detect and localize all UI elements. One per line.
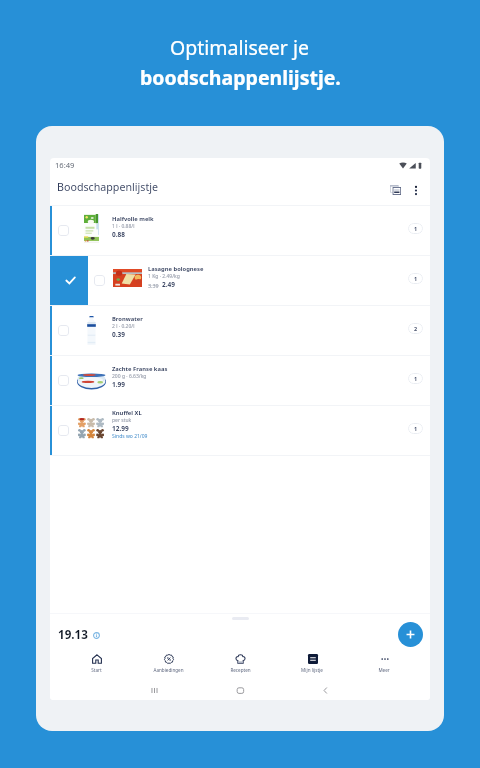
button[interactable]: Home (236, 684, 245, 696)
button[interactable]: Mijn lijstje (281, 652, 343, 674)
button[interactable]: Price info (93, 632, 100, 639)
staticText: Lasagne bolognese (148, 265, 204, 273)
button[interactable]: Meer (353, 652, 415, 674)
staticText: 200 g · 6.63/kg (112, 373, 147, 380)
button[interactable]: Quantity 1 (408, 223, 423, 234)
button[interactable]: More options (408, 182, 424, 198)
staticText: boodschappenlijstje. (140, 64, 341, 91)
staticText: per stuk (112, 417, 132, 424)
staticText: 0.88 (112, 230, 125, 239)
button[interactable]: Back (321, 684, 330, 696)
staticText: Boodschappenlijstje (57, 180, 159, 195)
button[interactable]: Quantity 2 (408, 323, 423, 334)
button[interactable]: Check Knuffel XL (50, 406, 430, 455)
button[interactable]: Quantity 1 (408, 423, 423, 434)
staticText: Sinds wo 21/09 (112, 433, 148, 440)
button[interactable]: Check Zachte Franse kaas (50, 356, 430, 405)
staticText: 1 Kg · 2.49/kg (148, 273, 180, 280)
staticText: 1 l · 0.88/l (112, 223, 135, 230)
staticText: 2.49 (162, 280, 175, 289)
staticText: 1 (414, 425, 418, 432)
staticText: 1 (414, 225, 418, 232)
staticText: Mijn lijstje (301, 667, 323, 673)
staticText: 2 l · 0.20/l (112, 323, 135, 330)
staticText: 0.39 (112, 330, 125, 339)
button[interactable]: Quantity 1 (408, 373, 423, 384)
staticText: 19.13 (58, 627, 88, 643)
button[interactable]: Check Lasagne bolognese (50, 256, 430, 305)
staticText: Start (91, 667, 102, 673)
staticText: Aanbiedingen (153, 667, 184, 673)
button[interactable]: Check Lasagne bolognese (94, 275, 105, 286)
button[interactable]: Check Knuffel XL (58, 425, 69, 436)
button[interactable]: Add item (398, 622, 423, 647)
staticText: 1.99 (112, 380, 125, 389)
button[interactable]: Check Bronwater (58, 325, 69, 336)
button[interactable]: Check Halfvolle melk (50, 206, 430, 255)
staticText: 16:49 (55, 160, 75, 170)
staticText: Knuffel XL (112, 409, 142, 417)
staticText: 12.99 (112, 424, 129, 433)
staticText: Halfvolle melk (112, 215, 154, 223)
button[interactable]: Recepten (209, 652, 271, 674)
staticText: Meer (378, 667, 390, 673)
button[interactable]: Check Halfvolle melk (58, 225, 69, 236)
button[interactable]: Check Zachte Franse kaas (58, 375, 69, 386)
button[interactable]: Start (65, 652, 127, 674)
button[interactable]: Copy list (387, 182, 403, 198)
staticText: Bronwater (112, 315, 143, 323)
staticText: Zachte Franse kaas (112, 365, 168, 373)
staticText: Optimaliseer je (170, 34, 310, 61)
staticText: 2 (414, 325, 418, 332)
staticText: 3.39 (148, 282, 159, 289)
button[interactable]: Aanbiedingen (137, 652, 199, 674)
button[interactable]: Recent apps (150, 684, 159, 696)
staticText: 1 (414, 375, 418, 382)
button[interactable]: Quantity 1 (408, 273, 423, 284)
button[interactable]: Check Bronwater (50, 306, 430, 355)
staticText: Recepten (230, 667, 251, 673)
staticText: 1 (414, 275, 418, 282)
